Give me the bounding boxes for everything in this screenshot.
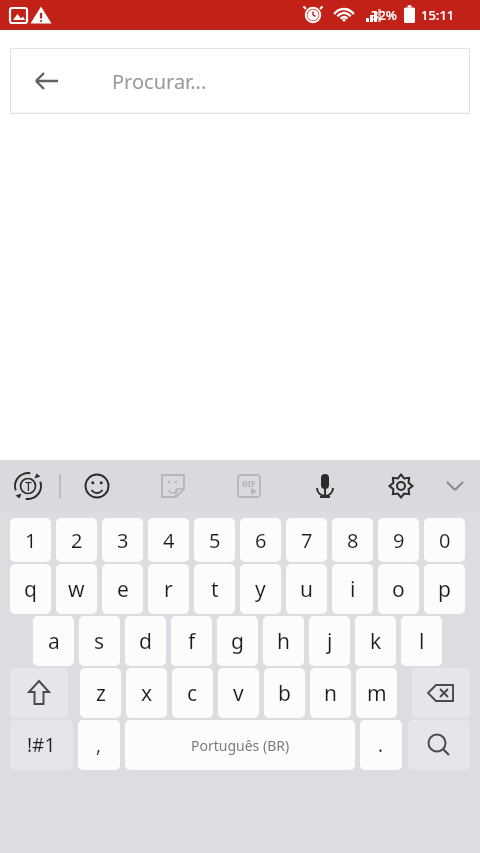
staticText: v xyxy=(233,679,244,708)
button[interactable]: 7 xyxy=(286,518,327,562)
button[interactable]: GIF xyxy=(226,463,272,509)
button[interactable]: Backspace xyxy=(412,668,470,718)
button[interactable]: w xyxy=(56,564,97,614)
staticText: z xyxy=(96,679,106,708)
button[interactable]: 6 xyxy=(240,518,281,562)
staticText: . xyxy=(378,732,384,758)
button[interactable]: j xyxy=(309,616,350,666)
staticText: 4 xyxy=(163,527,175,554)
staticText: o xyxy=(392,575,405,604)
staticText: Procurar... xyxy=(112,68,207,95)
staticText: !#1 xyxy=(27,732,56,758)
button[interactable]: Voice input xyxy=(302,463,348,509)
staticText: u xyxy=(300,575,313,604)
staticText: y xyxy=(255,575,266,604)
staticText: T xyxy=(25,478,32,494)
staticText: s xyxy=(94,627,105,656)
button[interactable]: i xyxy=(332,564,373,614)
staticText: n xyxy=(324,679,337,708)
staticText: i xyxy=(350,575,356,604)
staticText: 1 xyxy=(25,527,37,554)
staticText: 3 xyxy=(117,527,129,554)
button[interactable]: b xyxy=(264,668,305,718)
button[interactable]: m xyxy=(356,668,397,718)
staticText: 2 xyxy=(71,527,83,554)
button[interactable]: h xyxy=(263,616,304,666)
button[interactable]: Português (BR) xyxy=(125,720,355,770)
staticText: p xyxy=(438,575,451,604)
button[interactable]: s xyxy=(79,616,120,666)
staticText: e xyxy=(117,575,129,604)
staticText: d xyxy=(139,627,152,656)
button[interactable]: c xyxy=(172,668,213,718)
button[interactable]: Back xyxy=(21,55,73,107)
button[interactable]: Hide keyboard xyxy=(432,463,478,509)
button[interactable]: a xyxy=(33,616,74,666)
button[interactable]: Shift xyxy=(10,668,68,718)
button[interactable]: 5 xyxy=(194,518,235,562)
button[interactable]: . xyxy=(360,720,402,770)
staticText: 8 xyxy=(347,527,359,554)
staticText: a xyxy=(48,627,60,656)
button[interactable]: Stickers xyxy=(150,463,196,509)
button[interactable]: n xyxy=(310,668,351,718)
button[interactable]: 3 xyxy=(102,518,143,562)
button[interactable]: q xyxy=(10,564,51,614)
staticText: 0 xyxy=(439,527,451,554)
button[interactable]: Settings xyxy=(378,463,424,509)
staticText: g xyxy=(231,627,244,656)
staticText: 6 xyxy=(255,527,267,554)
button[interactable]: 0 xyxy=(424,518,465,562)
button[interactable]: f xyxy=(171,616,212,666)
staticText: t xyxy=(211,575,219,604)
button[interactable]: e xyxy=(102,564,143,614)
staticText: r xyxy=(164,575,173,604)
staticText: 5 xyxy=(209,527,221,554)
button[interactable]: 8 xyxy=(332,518,373,562)
button[interactable]: t xyxy=(194,564,235,614)
button[interactable]: y xyxy=(240,564,281,614)
staticText: b xyxy=(278,679,291,708)
button[interactable]: v xyxy=(218,668,259,718)
button[interactable]: k xyxy=(355,616,396,666)
staticText: m xyxy=(367,679,387,708)
staticText: j xyxy=(327,627,333,656)
button[interactable]: x xyxy=(126,668,167,718)
staticText: w xyxy=(68,575,85,604)
button[interactable]: z xyxy=(80,668,121,718)
button[interactable]: Search xyxy=(408,720,470,770)
button[interactable]: 2 xyxy=(56,518,97,562)
staticText: q xyxy=(24,575,37,604)
staticText: GIF xyxy=(242,478,256,489)
button[interactable]: Emoji xyxy=(74,463,120,509)
button[interactable]: o xyxy=(378,564,419,614)
button[interactable]: !#1 xyxy=(10,720,73,770)
button[interactable]: Back xyxy=(10,48,470,114)
staticText: h xyxy=(277,627,290,656)
staticText: 9 xyxy=(393,527,405,554)
button[interactable]: p xyxy=(424,564,465,614)
staticText: , xyxy=(96,732,102,758)
staticText: l xyxy=(419,627,425,656)
button[interactable]: r xyxy=(148,564,189,614)
staticText: 15:11 xyxy=(421,6,455,24)
staticText: f xyxy=(188,627,196,656)
button[interactable]: 4 xyxy=(148,518,189,562)
button[interactable]: d xyxy=(125,616,166,666)
staticText: 32% xyxy=(371,6,397,24)
staticText: 7 xyxy=(301,527,313,554)
button[interactable]: , xyxy=(78,720,120,770)
button[interactable]: u xyxy=(286,564,327,614)
staticText: c xyxy=(187,679,198,708)
button[interactable]: l xyxy=(401,616,442,666)
button[interactable]: g xyxy=(217,616,258,666)
button[interactable]: 9 xyxy=(378,518,419,562)
staticText: x xyxy=(141,679,153,708)
staticText: k xyxy=(370,627,382,656)
button[interactable]: 1 xyxy=(10,518,51,562)
staticText: Português (BR) xyxy=(191,736,290,755)
button[interactable]: Translate xyxy=(5,463,51,509)
